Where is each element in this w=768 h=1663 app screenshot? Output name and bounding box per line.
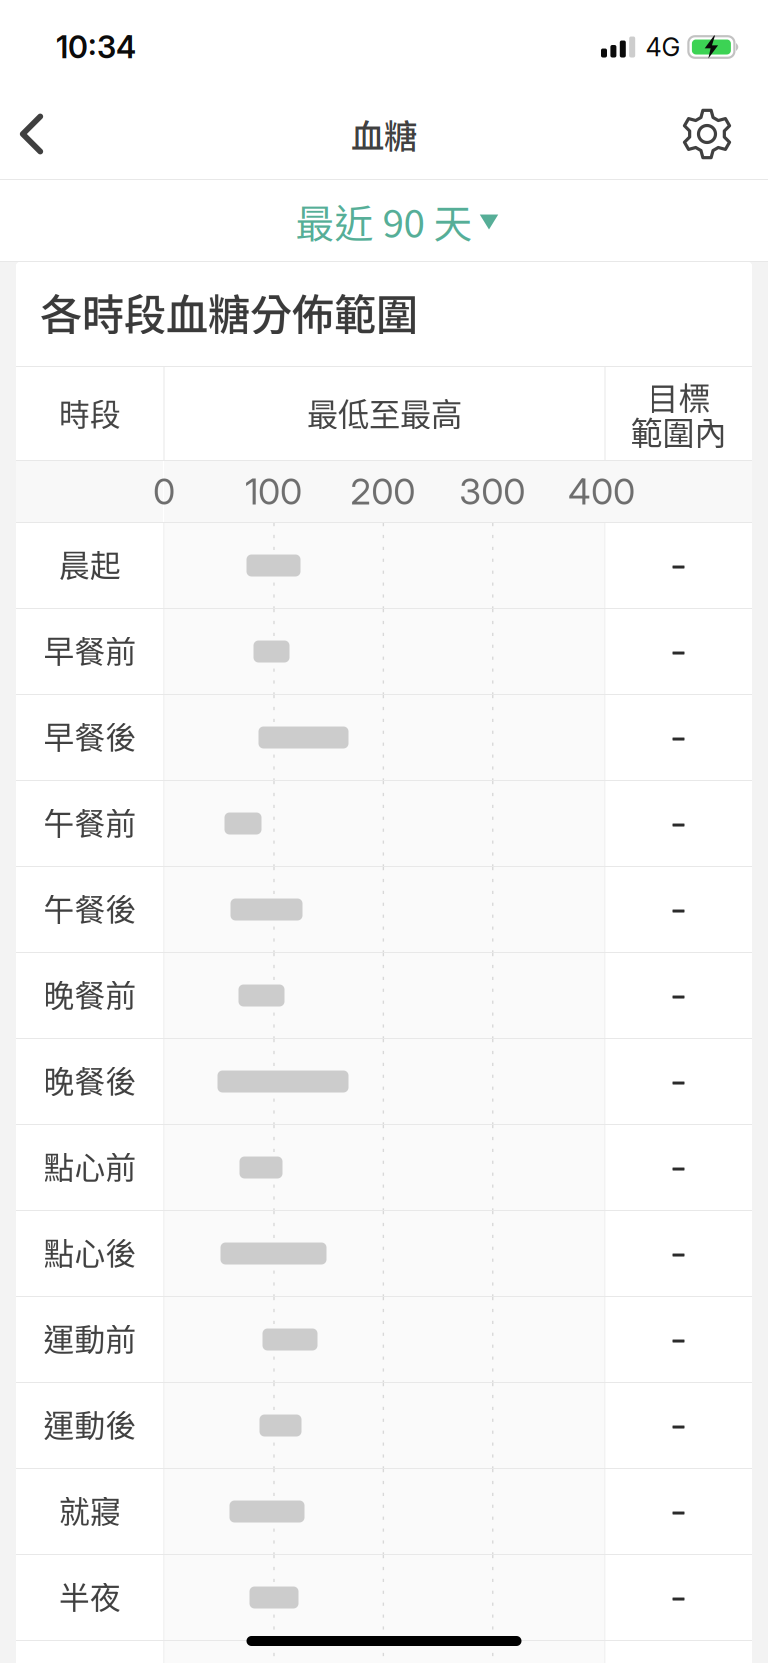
staticText: 範圍內 <box>630 408 726 454</box>
staticText: 午餐後 <box>43 885 136 930</box>
button[interactable]: Back <box>0 88 63 180</box>
staticText: 目標 <box>646 373 710 420</box>
staticText: 300 <box>459 470 525 513</box>
staticText: 時段 <box>59 390 121 435</box>
staticText: 4G <box>645 32 680 62</box>
staticText: 10:34 <box>56 28 136 65</box>
staticText: 晚餐前 <box>43 971 136 1016</box>
staticText: 晚餐後 <box>43 1057 136 1102</box>
staticText: 點心前 <box>43 1143 136 1188</box>
staticText: 運動前 <box>43 1315 136 1360</box>
staticText: 200 <box>350 470 415 513</box>
button[interactable]: Settings <box>646 88 768 180</box>
staticText: 早餐後 <box>43 713 136 758</box>
staticText: 就寢 <box>59 1487 121 1532</box>
staticText: 400 <box>568 470 635 513</box>
staticText: 100 <box>245 470 302 513</box>
staticText: 0 <box>153 470 175 513</box>
staticText: 最低至最高 <box>307 390 462 435</box>
staticText: 點心後 <box>43 1229 136 1274</box>
staticText: 午餐前 <box>43 799 136 844</box>
staticText: 血糖 <box>351 110 417 158</box>
staticText: 運動後 <box>43 1401 136 1446</box>
staticText: 早餐前 <box>43 627 136 672</box>
staticText: 各時段血糖分佈範圍 <box>40 281 418 342</box>
staticText: 最近 90 天 <box>295 193 472 249</box>
staticText: 半夜 <box>59 1573 121 1618</box>
button[interactable]: 最近 90 天 <box>0 180 768 262</box>
staticText: 晨起 <box>59 541 121 586</box>
